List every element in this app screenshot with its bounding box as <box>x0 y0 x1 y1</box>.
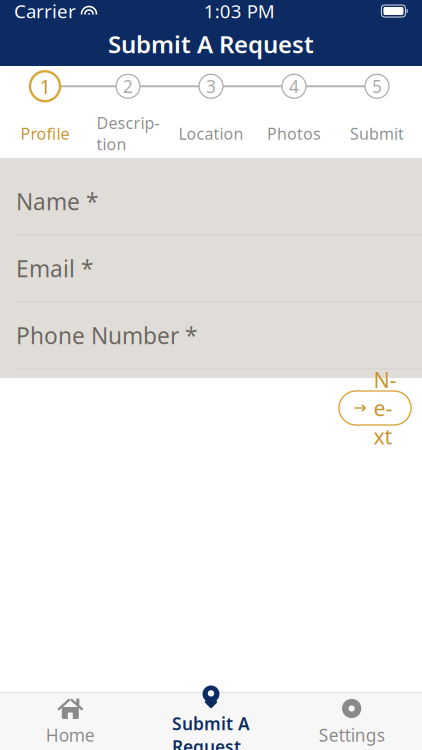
staticText: 5 <box>372 75 382 98</box>
button[interactable]: Home <box>0 692 141 750</box>
staticText: Submit A Request <box>172 712 250 750</box>
staticText: 3 <box>206 75 216 98</box>
staticText: Next <box>373 365 396 450</box>
staticText: 4 <box>289 75 299 98</box>
staticText: Phone Number * <box>16 320 197 350</box>
staticText: Home <box>46 723 95 746</box>
staticText: Description <box>96 112 159 155</box>
staticText: Location <box>178 123 243 144</box>
staticText: Profile <box>20 123 69 144</box>
staticText: Settings <box>319 723 385 746</box>
staticText: Submit A Request <box>108 28 314 60</box>
staticText: Submit <box>350 123 404 144</box>
staticText: Name * <box>16 186 98 216</box>
button[interactable]: Submit A Request <box>141 692 281 750</box>
button[interactable]: Settings <box>281 692 422 750</box>
button[interactable]: Next <box>339 391 411 425</box>
staticText: 2 <box>123 75 133 98</box>
staticText: 1 <box>39 73 50 100</box>
staticText: Email * <box>16 253 93 283</box>
staticText: 1:03 PM <box>204 0 275 23</box>
staticText: Photos <box>267 123 321 144</box>
staticText: Carrier <box>14 0 76 23</box>
